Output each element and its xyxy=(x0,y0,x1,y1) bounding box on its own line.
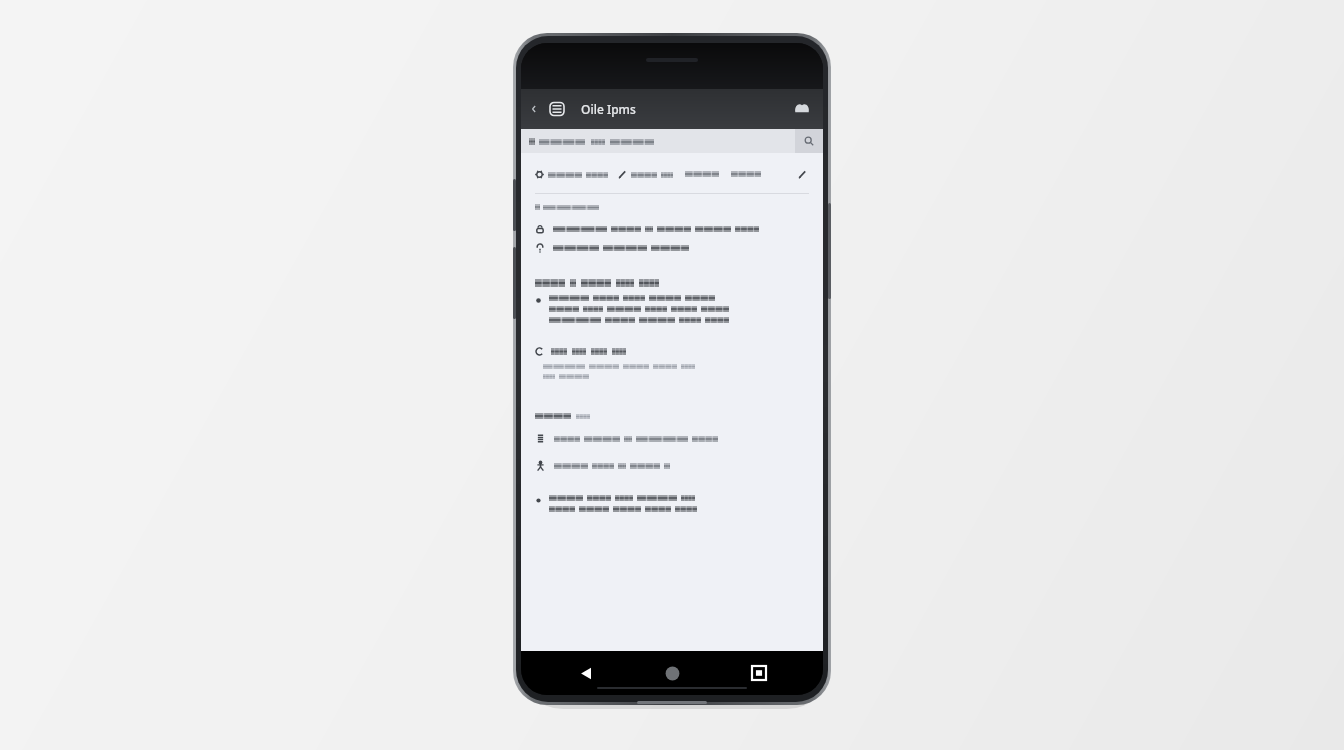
button[interactable]: More xyxy=(795,167,809,181)
button[interactable]: Home xyxy=(650,651,694,695)
button[interactable]: Back xyxy=(529,104,539,114)
button[interactable]: Back xyxy=(564,651,608,695)
button[interactable] xyxy=(535,168,608,181)
button[interactable]: Recents xyxy=(737,651,781,695)
button[interactable] xyxy=(731,169,761,179)
button[interactable] xyxy=(618,168,673,181)
button[interactable]: Cloud xyxy=(789,96,815,122)
button[interactable] xyxy=(521,243,823,253)
button[interactable]: Menu xyxy=(545,97,569,121)
button[interactable] xyxy=(521,138,795,145)
button[interactable] xyxy=(521,460,823,471)
button[interactable] xyxy=(521,224,823,234)
button[interactable] xyxy=(521,433,823,444)
button[interactable] xyxy=(685,169,719,179)
button[interactable]: Search xyxy=(795,129,823,153)
staticText: Oile Ipms xyxy=(581,101,636,117)
